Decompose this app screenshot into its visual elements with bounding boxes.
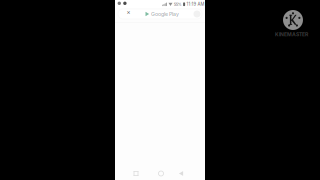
button[interactable]: Recent apps	[129, 167, 143, 179]
button[interactable]: Account	[193, 10, 200, 17]
staticText: ✕	[127, 10, 131, 15]
staticText: 11:19 AM	[186, 2, 204, 7]
button[interactable]: Home	[154, 167, 168, 179]
button[interactable]: Close	[124, 8, 133, 17]
staticText: 55%	[174, 2, 182, 7]
button[interactable]: Google Play	[118, 9, 202, 19]
staticText: KINEMASTER	[275, 31, 308, 37]
button[interactable]: Back	[174, 167, 188, 179]
staticText: Google Play	[151, 11, 179, 17]
